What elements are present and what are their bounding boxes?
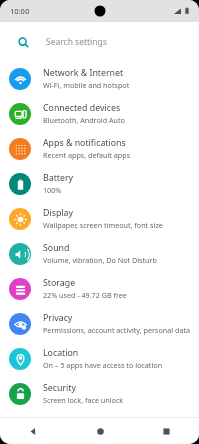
staticText: Display: [43, 207, 74, 219]
staticText: Privacy: [43, 312, 73, 324]
staticText: 22% used - 49.72 GB free: [43, 290, 127, 300]
staticText: Recent apps, default apps: [43, 150, 131, 160]
staticText: Volume, vibration, Do Not Disturb: [43, 255, 157, 265]
staticText: Apps & notifications: [43, 137, 126, 149]
staticText: Bluetooth, Android Auto: [43, 115, 125, 125]
staticText: Screen lock, face unlock: [43, 395, 124, 405]
button[interactable]: Location: [0, 341, 199, 376]
button[interactable]: Security: [0, 376, 199, 411]
button[interactable]: Network & Internet: [0, 61, 199, 96]
button[interactable]: Storage: [0, 271, 199, 306]
staticText: Search settings: [46, 36, 107, 48]
button[interactable]: Home: [67, 418, 133, 444]
staticText: Sound: [43, 242, 70, 254]
button[interactable]: Apps & notifications: [0, 131, 199, 166]
staticText: Network & Internet: [43, 67, 124, 79]
staticText: Security: [43, 382, 77, 394]
button[interactable]: Display: [0, 201, 199, 236]
staticText: Location: [43, 347, 79, 359]
button[interactable]: Recent apps: [133, 418, 199, 444]
staticText: 10:00: [10, 6, 30, 16]
staticText: Battery: [43, 172, 74, 184]
staticText: Storage: [43, 277, 76, 289]
staticText: Wallpaper, screen timeout, font size: [43, 220, 163, 230]
staticText: Connected devices: [43, 102, 121, 114]
staticText: Wi-Fi, mobile and hotspot: [43, 80, 130, 90]
button[interactable]: Back: [0, 418, 67, 444]
button[interactable]: Privacy: [0, 306, 199, 341]
button[interactable]: Battery: [0, 166, 199, 201]
button[interactable]: Search settings: [8, 28, 191, 56]
button[interactable]: Connected devices: [0, 96, 199, 131]
staticText: Permissions, account activity, personal …: [43, 325, 191, 335]
staticText: On – 5 apps have access to location: [43, 360, 163, 370]
button[interactable]: Sound: [0, 236, 199, 271]
staticText: 100%: [43, 185, 62, 195]
